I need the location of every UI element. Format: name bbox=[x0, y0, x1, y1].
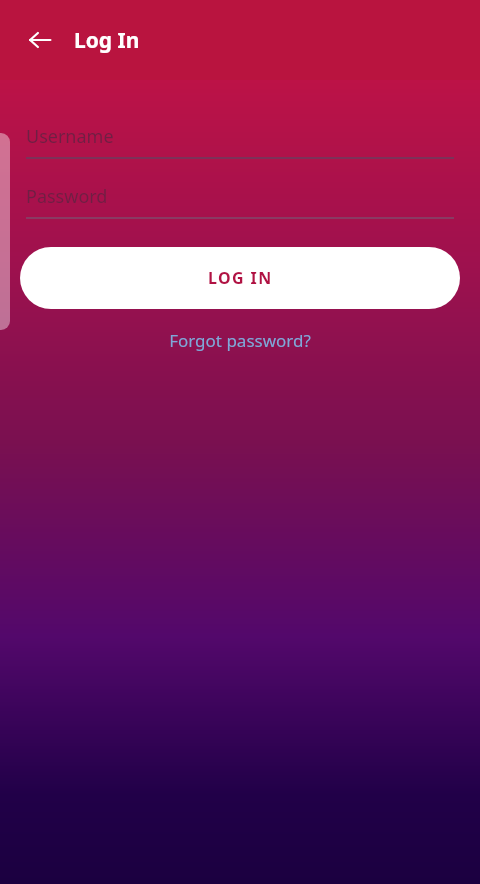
staticText: Username bbox=[26, 124, 114, 149]
button[interactable]: LOG IN bbox=[20, 247, 460, 309]
staticText: Password bbox=[26, 184, 108, 209]
button[interactable]: Back bbox=[16, 16, 64, 64]
staticText: LOG IN bbox=[208, 267, 273, 289]
staticText: Forgot password? bbox=[169, 329, 311, 352]
staticText: Log In bbox=[74, 26, 140, 55]
button[interactable]: Username bbox=[26, 121, 454, 159]
button[interactable]: Password bbox=[26, 181, 454, 219]
button[interactable]: Forgot password? bbox=[0, 329, 480, 352]
